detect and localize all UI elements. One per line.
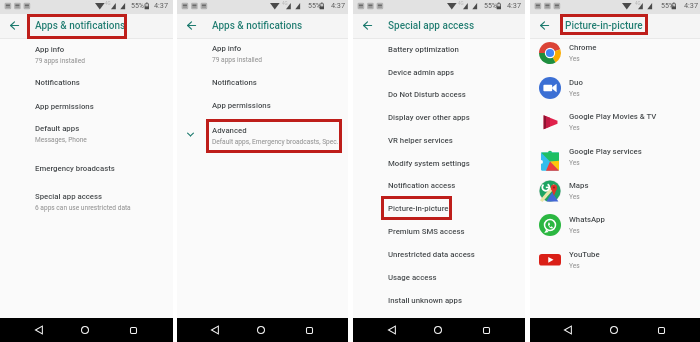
staticText: 55% (484, 2, 497, 10)
staticText: WhatsApp (569, 215, 605, 224)
staticText: 4:37 (684, 1, 699, 10)
button[interactable]: Back (208, 318, 222, 342)
staticText: Emergency broadcasts (35, 164, 115, 173)
staticText: Google Play Movies & TV (569, 112, 657, 121)
staticText: Unrestricted data access (388, 250, 475, 259)
button[interactable]: Chrome (530, 38, 700, 68)
staticText: Default apps, Emergency broadcasts, Spec… (212, 138, 342, 146)
staticText: App info (35, 45, 65, 54)
button[interactable]: Navigate up (7, 18, 21, 32)
staticText: 6 apps can use unrestricted data (35, 204, 131, 212)
staticText: App permissions (35, 102, 94, 111)
button[interactable]: App info (0, 45, 173, 69)
staticText: 4:37 (331, 1, 346, 10)
staticText: Do Not Disturb access (388, 90, 466, 99)
button[interactable]: Back (32, 318, 46, 342)
staticText: Notifications (212, 78, 257, 87)
button[interactable]: Emergency broadcasts (0, 164, 173, 180)
staticText: Yes (569, 227, 580, 235)
button[interactable]: Home (254, 318, 268, 342)
staticText: 55% (131, 2, 144, 10)
button[interactable]: App permissions (177, 101, 348, 117)
staticText: Install unknown apps (388, 296, 462, 305)
staticText: App info (212, 44, 242, 53)
staticText: 4:37 (507, 1, 522, 10)
button[interactable]: Notifications (0, 78, 173, 94)
button[interactable]: Battery optimization (353, 45, 525, 61)
staticText: Picture-in-picture (565, 20, 643, 32)
button[interactable]: Google Play services (530, 142, 700, 172)
staticText: Apps & notifications (212, 20, 303, 32)
staticText: Notifications (35, 78, 80, 87)
button[interactable]: Usage access (353, 273, 525, 289)
staticText: Special app access (35, 192, 103, 201)
button[interactable]: Special app access (0, 192, 173, 216)
button[interactable]: Recent apps (126, 318, 140, 342)
button[interactable]: Google Play Movies & TV (530, 107, 700, 137)
staticText: 4G (282, 1, 288, 6)
staticText: 4:37 (154, 1, 169, 10)
staticText: 79 apps installed (35, 57, 85, 65)
staticText: Google Play services (569, 147, 642, 156)
button[interactable]: Notification access (353, 181, 525, 197)
staticText: YouTube (569, 250, 600, 259)
staticText: Yes (569, 124, 580, 132)
staticText: Chrome (569, 43, 597, 52)
staticText: 55% (308, 2, 321, 10)
staticText: Usage access (388, 273, 437, 282)
button[interactable]: Install unknown apps (353, 296, 525, 312)
staticText: 4G (105, 1, 111, 6)
staticText: Duo (569, 78, 583, 87)
button[interactable]: Navigate up (360, 18, 374, 32)
button[interactable]: Premium SMS access (353, 227, 525, 243)
button[interactable]: Maps (530, 176, 700, 206)
staticText: Display over other apps (388, 113, 470, 122)
button[interactable]: Recent apps (302, 318, 316, 342)
button[interactable]: Home (431, 318, 445, 342)
staticText: App permissions (212, 101, 271, 110)
staticText: Messages, Phone (35, 136, 87, 144)
staticText: 55% (661, 2, 674, 10)
staticText: 79 apps installed (212, 56, 262, 64)
button[interactable]: Recent apps (654, 318, 668, 342)
staticText: Yes (569, 90, 580, 98)
button[interactable]: App info (177, 44, 348, 68)
staticText: Default apps (35, 124, 80, 133)
button[interactable]: Home (78, 318, 92, 342)
staticText: Modify system settings (388, 159, 470, 168)
button[interactable]: Advanced (177, 126, 348, 150)
staticText: Premium SMS access (388, 227, 465, 236)
staticText: 4G (635, 1, 641, 6)
button[interactable]: Modify system settings (353, 159, 525, 175)
staticText: Apps & notifications (35, 20, 126, 32)
button[interactable]: Navigate up (184, 18, 198, 32)
button[interactable]: Navigate up (537, 18, 551, 32)
button[interactable]: WhatsApp (530, 210, 700, 240)
button[interactable]: Recent apps (479, 318, 493, 342)
staticText: 4G (458, 1, 464, 6)
button[interactable]: Default apps (0, 124, 173, 148)
button[interactable]: Unrestricted data access (353, 250, 525, 266)
staticText: Yes (569, 159, 580, 167)
button[interactable]: Notifications (177, 78, 348, 94)
button[interactable]: YouTube (530, 245, 700, 275)
button[interactable]: Device admin apps (353, 68, 525, 84)
button[interactable]: App permissions (0, 102, 173, 118)
button[interactable]: Back (385, 318, 399, 342)
staticText: Special app access (388, 20, 475, 32)
staticText: Notification access (388, 181, 456, 190)
button[interactable]: Duo (530, 73, 700, 103)
staticText: Device admin apps (388, 68, 455, 77)
button[interactable]: Picture-in-picture (353, 204, 525, 220)
staticText: Yes (569, 55, 580, 63)
staticText: Battery optimization (388, 45, 459, 54)
staticText: Yes (569, 262, 580, 270)
staticText: Picture-in-picture (388, 204, 449, 213)
button[interactable]: Do Not Disturb access (353, 90, 525, 106)
button[interactable]: Home (607, 318, 621, 342)
staticText: Maps (569, 181, 589, 190)
button[interactable]: Back (561, 318, 575, 342)
button[interactable]: VR helper services (353, 136, 525, 152)
staticText: Yes (569, 193, 580, 201)
button[interactable]: Display over other apps (353, 113, 525, 129)
